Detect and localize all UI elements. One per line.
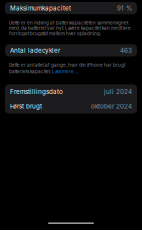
staticText: Antal ladecykler: [10, 47, 60, 54]
staticText: Dette er antallet af gange, hvor din iPh…: [9, 62, 125, 68]
staticText: oktober 2024: [91, 103, 132, 110]
staticText: Læs mere …: [52, 69, 79, 74]
button[interactable]: Først brugt: [5, 99, 137, 113]
staticText: Maksimumkapacitet: [10, 4, 71, 12]
staticText: Fremstillingsdato: [10, 88, 63, 95]
button[interactable]: Maksimumkapacitet: [5, 2, 137, 14]
button[interactable]: Læs mere …: [52, 69, 79, 74]
button[interactable]: Fremstillingsdato: [5, 84, 137, 99]
staticText: 91 %: [117, 4, 132, 12]
staticText: 463: [120, 47, 132, 54]
button[interactable]: Antal ladecykler: [5, 44, 137, 56]
staticText: Dette er en måling af batterikapaciteten…: [9, 20, 131, 36]
staticText: batteriets kapacitet.: [9, 69, 52, 74]
staticText: Først brugt: [10, 103, 42, 110]
staticText: juli 2024: [104, 88, 132, 95]
